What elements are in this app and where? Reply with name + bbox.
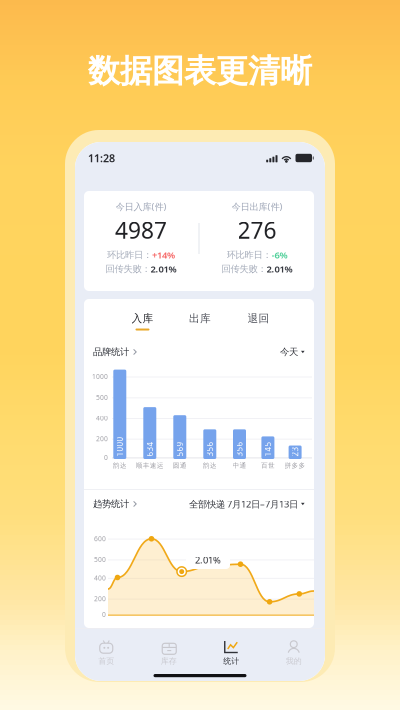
staticText: 0 xyxy=(104,453,108,462)
button[interactable]: 退回 xyxy=(235,305,281,333)
staticText: 我的 xyxy=(286,656,302,666)
button[interactable]: 品牌统计 xyxy=(93,344,137,360)
staticText: 出库 xyxy=(189,312,211,325)
button[interactable]: 统计 xyxy=(200,629,262,671)
button[interactable]: 全部快递 7月12日–7月13日 xyxy=(189,496,305,512)
staticText: 2.01% xyxy=(195,554,221,566)
staticText: -6% xyxy=(271,249,287,261)
button[interactable]: 库存 xyxy=(137,629,200,671)
staticText: 库存 xyxy=(161,656,177,666)
staticText: 环比昨日： xyxy=(226,249,271,261)
staticText: 1000 xyxy=(92,372,108,381)
staticText: 356 xyxy=(227,439,242,450)
staticText: 634 xyxy=(138,439,153,450)
staticText: 145 xyxy=(256,439,271,450)
staticText: +14% xyxy=(152,249,175,261)
staticText: 入库 xyxy=(131,312,153,325)
button[interactable]: 出库 xyxy=(177,305,223,333)
staticText: 今日入库(件) xyxy=(115,200,166,213)
staticText: 数据图表更清晰 xyxy=(88,51,312,91)
staticText: 退回 xyxy=(247,312,269,325)
staticText: 569 xyxy=(168,439,183,450)
staticText: 顺丰速运 xyxy=(136,461,164,470)
staticText: 400 xyxy=(94,573,106,582)
staticText: 品牌统计 xyxy=(93,346,129,358)
staticText: 200 xyxy=(96,434,108,443)
staticText: 趋势统计 xyxy=(93,498,129,510)
staticText: 1000 xyxy=(108,439,128,450)
staticText: 回传失败： xyxy=(221,263,266,275)
staticText: 韵达 xyxy=(113,461,127,470)
staticText: 500 xyxy=(96,393,108,402)
staticText: 276 xyxy=(237,215,276,245)
staticText: 200 xyxy=(94,594,106,603)
staticText: 600 xyxy=(94,534,106,543)
staticText: 今日出库(件) xyxy=(231,200,282,213)
button[interactable]: 趋势统计 xyxy=(93,496,137,512)
staticText: 首页 xyxy=(98,656,114,666)
staticText: 今天 xyxy=(280,346,298,358)
staticText: 500 xyxy=(94,555,106,564)
staticText: 统计 xyxy=(223,656,239,666)
staticText: 中通 xyxy=(232,461,246,470)
staticText: 圆通 xyxy=(173,461,187,470)
staticText: 356 xyxy=(198,439,213,450)
staticText: 拼多多 xyxy=(285,461,306,470)
staticText: 0 xyxy=(102,610,106,619)
staticText: 全部快递 7月12日–7月13日 xyxy=(189,498,298,510)
staticText: 回传失败： xyxy=(105,263,150,275)
staticText: 23 xyxy=(283,439,293,450)
staticText: 百世 xyxy=(261,461,275,470)
staticText: 韵达 xyxy=(203,461,217,470)
staticText: 2.01% xyxy=(266,263,292,275)
staticText: 4987 xyxy=(115,215,167,245)
button[interactable]: 我的 xyxy=(262,629,325,671)
staticText: 环比昨日： xyxy=(107,249,152,261)
button[interactable]: 首页 xyxy=(75,629,137,671)
staticText: 400 xyxy=(96,414,108,422)
staticText: 11:28 xyxy=(88,151,115,165)
button[interactable]: 今天 xyxy=(280,344,305,360)
button[interactable]: 入库 xyxy=(119,305,165,333)
staticText: 2.01% xyxy=(150,263,176,275)
